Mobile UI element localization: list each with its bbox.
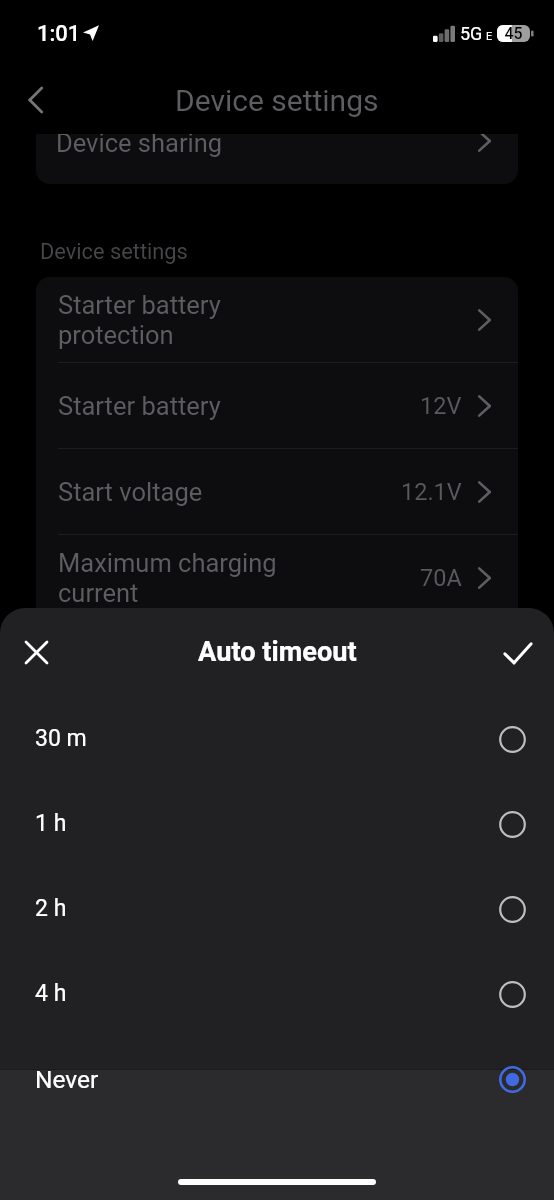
button[interactable]: Starter battery protection: [36, 277, 518, 362]
staticText: 4 h: [35, 980, 67, 1007]
staticText: E: [486, 30, 493, 43]
button[interactable]: Starter battery: [36, 363, 518, 448]
staticText: 45: [504, 24, 523, 43]
button[interactable]: 1 h: [0, 781, 554, 866]
staticText: 5G: [460, 23, 483, 44]
staticText: 1:01: [37, 21, 81, 47]
staticText: Device settings: [40, 239, 188, 265]
button[interactable]: Back: [14, 78, 58, 122]
button[interactable]: Confirm: [494, 629, 541, 676]
button[interactable]: Close: [13, 629, 60, 676]
button[interactable]: Never: [0, 1069, 554, 1200]
staticText: Device sharing: [56, 134, 223, 158]
staticText: 70A: [420, 564, 462, 592]
staticText: Starter battery: [58, 391, 221, 421]
button[interactable]: 4 h: [0, 951, 554, 1036]
button[interactable]: Auto timeout: [36, 621, 518, 706]
staticText: 2 h: [35, 895, 67, 922]
staticText: Auto timeout: [198, 636, 357, 668]
staticText: Never: [35, 1065, 99, 1094]
button[interactable]: 30 m: [0, 696, 554, 781]
staticText: Auto timeout: [58, 649, 205, 679]
button[interactable]: Maximum charging current: [36, 535, 518, 620]
staticText: Device settings: [175, 83, 379, 118]
button[interactable]: Start voltage: [36, 449, 518, 534]
staticText: 12.1V: [401, 478, 462, 506]
staticText: 1 h: [35, 810, 67, 837]
staticText: Starter battery protection: [58, 290, 221, 350]
staticText: 30 m: [35, 725, 87, 752]
staticText: Start voltage: [58, 477, 203, 507]
staticText: Maximum charging current: [58, 548, 277, 608]
button[interactable]: 2 h: [0, 866, 554, 951]
staticText: 12V: [420, 392, 462, 420]
